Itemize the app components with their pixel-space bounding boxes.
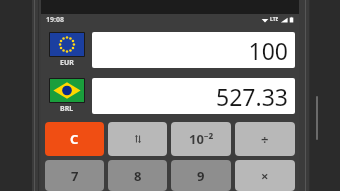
button[interactable]: 7 xyxy=(45,160,104,191)
staticText: 19:08 xyxy=(46,15,64,25)
button[interactable]: Swap currencies xyxy=(108,122,167,156)
button[interactable]: 100 xyxy=(92,32,295,68)
staticText: EUR xyxy=(60,58,74,68)
staticText: 100 xyxy=(248,35,288,66)
staticText: 527.33 xyxy=(216,81,288,112)
button[interactable]: 9 xyxy=(171,160,231,191)
staticText: 9 xyxy=(197,167,205,185)
staticText: C xyxy=(70,130,79,148)
button[interactable]: 8 xyxy=(108,160,167,191)
button[interactable]: × xyxy=(235,160,295,191)
staticText: 7 xyxy=(71,167,79,185)
button[interactable]: 10⁻² xyxy=(171,122,231,156)
button[interactable]: 527.33 xyxy=(92,78,295,114)
staticText: × xyxy=(261,167,269,185)
button[interactable]: C xyxy=(45,122,104,156)
staticText: 10⁻² xyxy=(189,130,214,148)
button[interactable]: BRL xyxy=(45,74,89,118)
staticText: BRL xyxy=(60,104,74,114)
staticText: ÷ xyxy=(261,130,269,148)
staticText: LTE xyxy=(270,16,279,23)
staticText: 8 xyxy=(134,167,142,185)
button[interactable]: ÷ xyxy=(235,122,295,156)
button[interactable]: EUR xyxy=(45,28,89,72)
